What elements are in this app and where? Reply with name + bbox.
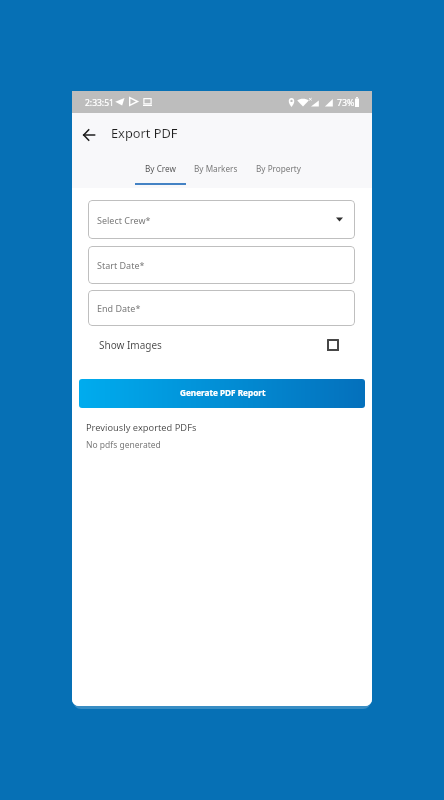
button[interactable]: Show Images xyxy=(99,334,339,356)
staticText: Start Date* xyxy=(97,259,145,271)
button[interactable]: Generate PDF Report xyxy=(79,379,365,408)
button[interactable]: Start Date* xyxy=(88,246,355,284)
button[interactable]: Back xyxy=(72,116,107,153)
staticText: No pdfs generated xyxy=(86,439,161,451)
staticText: End Date* xyxy=(97,302,141,314)
staticText: Previously exported PDFs xyxy=(86,421,197,434)
staticText: By Crew xyxy=(145,163,176,174)
staticText: Select Crew* xyxy=(97,214,151,226)
button[interactable]: End Date* xyxy=(88,290,355,326)
staticText: Generate PDF Report xyxy=(180,387,266,398)
staticText: Show Images xyxy=(99,338,162,352)
staticText: By Markers xyxy=(194,163,238,174)
staticText: 73% xyxy=(337,97,355,109)
button[interactable]: By Property xyxy=(253,150,304,188)
staticText: 2:33:51 xyxy=(85,97,114,109)
button[interactable]: By Crew xyxy=(135,150,186,188)
staticText: Export PDF xyxy=(111,124,178,141)
button[interactable]: By Markers xyxy=(190,150,241,188)
button[interactable]: Select Crew* xyxy=(88,200,355,239)
staticText: By Property xyxy=(256,163,301,174)
